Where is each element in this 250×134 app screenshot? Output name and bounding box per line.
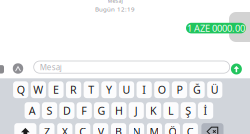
button[interactable]: Y: [101, 81, 116, 98]
staticText: I: [142, 82, 146, 97]
button[interactable]: V: [93, 123, 108, 134]
staticText: H: [115, 103, 123, 118]
button[interactable]: Ğ: [189, 81, 205, 98]
button[interactable]: E: [48, 81, 64, 98]
button[interactable]: Send: [231, 63, 242, 74]
staticText: O: [158, 82, 166, 97]
button[interactable]: W: [31, 81, 46, 98]
button[interactable]: L: [163, 102, 178, 119]
button[interactable]: Q: [13, 81, 28, 98]
button[interactable]: H: [111, 102, 126, 119]
button[interactable]: Mesaj: [34, 61, 230, 73]
staticText: Ş: [185, 103, 191, 118]
staticText: L: [168, 103, 174, 118]
staticText: C: [79, 124, 86, 134]
button[interactable]: Backspace: [201, 123, 223, 134]
button[interactable]: X: [57, 123, 72, 134]
button[interactable]: O: [154, 81, 169, 98]
button[interactable]: Ç: [183, 123, 198, 134]
button[interactable]: P: [172, 81, 187, 98]
button[interactable]: T: [84, 81, 99, 98]
staticText: N: [133, 124, 141, 134]
staticText: Q: [17, 82, 25, 97]
staticText: Z: [44, 124, 50, 134]
staticText: A: [29, 103, 36, 118]
button[interactable]: Shift: [14, 123, 36, 134]
button[interactable]: J: [129, 102, 144, 119]
button[interactable]: R: [66, 81, 81, 98]
staticText: Ü: [211, 82, 219, 97]
staticText: X: [62, 124, 68, 134]
button[interactable]: Ö: [165, 123, 180, 134]
staticText: Mesaj: [107, 0, 122, 4]
staticText: Ğ: [193, 82, 201, 97]
staticText: V: [98, 124, 104, 134]
button[interactable]: Z: [39, 123, 54, 134]
button[interactable]: F: [77, 102, 92, 119]
staticText: P: [176, 82, 182, 97]
staticText: J: [135, 103, 138, 118]
staticText: D: [63, 103, 71, 118]
staticText: W: [33, 82, 43, 97]
staticText: 1 AZE 0000.00: [187, 22, 245, 34]
button[interactable]: M: [147, 123, 162, 134]
staticText: M: [149, 124, 159, 134]
button[interactable]: Camera: [0, 65, 4, 73]
staticText: Ö: [168, 124, 176, 134]
button[interactable]: D: [59, 102, 74, 119]
button[interactable]: İ: [198, 102, 213, 119]
staticText: Bugün 12:19: [95, 5, 135, 13]
staticText: U: [122, 82, 130, 97]
staticText: Mesaj: [40, 62, 62, 73]
button[interactable]: K: [146, 102, 161, 119]
button[interactable]: A: [25, 102, 40, 119]
button[interactable]: N: [129, 123, 144, 134]
staticText: K: [150, 103, 157, 118]
button[interactable]: C: [75, 123, 90, 134]
button[interactable]: App Store: [13, 63, 23, 74]
button[interactable]: U: [119, 81, 134, 98]
staticText: R: [70, 82, 77, 97]
staticText: T: [88, 82, 94, 97]
button[interactable]: S: [42, 102, 57, 119]
button[interactable]: B: [111, 123, 126, 134]
staticText: G: [98, 103, 106, 118]
staticText: E: [53, 82, 59, 97]
button[interactable]: Ü: [207, 81, 222, 98]
staticText: B: [115, 124, 122, 134]
staticText: S: [46, 103, 52, 118]
button[interactable]: G: [94, 102, 109, 119]
staticText: F: [81, 103, 87, 118]
staticText: İ: [204, 103, 208, 118]
button[interactable]: I: [137, 81, 152, 98]
staticText: Ç: [187, 124, 194, 134]
staticText: Y: [106, 82, 112, 97]
button[interactable]: Ş: [181, 102, 196, 119]
